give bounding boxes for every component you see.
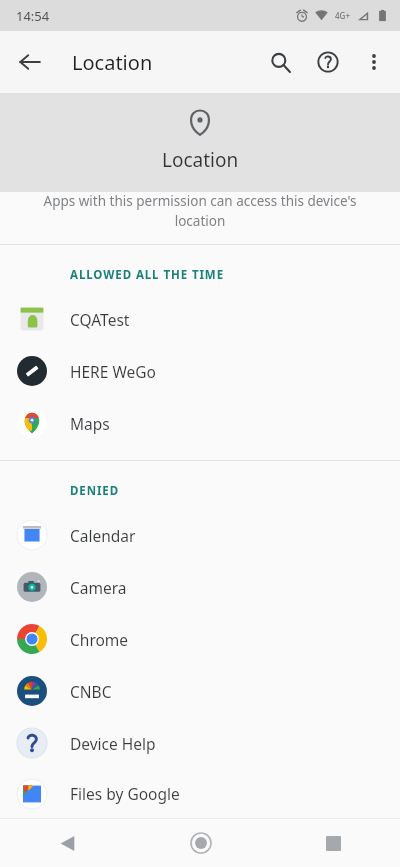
button[interactable]: Back [0, 819, 134, 867]
staticText: CNBC [70, 681, 112, 702]
button[interactable]: Back [6, 38, 54, 86]
button[interactable]: Maps [0, 397, 400, 449]
staticText: Device Help [70, 733, 156, 754]
button[interactable]: Search [256, 38, 304, 86]
staticText: 14:54 [16, 7, 50, 25]
button[interactable]: Home [134, 819, 267, 867]
button[interactable]: Help [304, 38, 352, 86]
staticText: HERE WeGo [70, 361, 156, 382]
staticText: Location [162, 147, 239, 173]
button[interactable]: Files by Google [0, 769, 400, 818]
staticText: CQATest [70, 309, 130, 330]
button[interactable]: Chrome [0, 613, 400, 665]
button[interactable]: Recent apps [267, 819, 400, 867]
button[interactable]: Device Help [0, 717, 400, 769]
button[interactable]: Camera [0, 561, 400, 613]
staticText: Files by Google [70, 783, 180, 804]
button[interactable]: Calendar [0, 509, 400, 561]
staticText: Calendar [70, 525, 136, 546]
staticText: Chrome [70, 629, 129, 650]
staticText: ALLOWED ALL THE TIME [70, 267, 224, 283]
staticText: 4G+ [335, 10, 350, 21]
button[interactable]: CQATest [0, 293, 400, 345]
staticText: Apps with this permission can access thi… [36, 192, 364, 230]
staticText: Camera [70, 577, 127, 598]
staticText: Maps [70, 413, 110, 434]
button[interactable]: HERE WeGo [0, 345, 400, 397]
staticText: DENIED [70, 483, 120, 499]
button[interactable]: More options [352, 40, 396, 84]
staticText: Location [72, 49, 153, 76]
button[interactable]: CNBC [0, 665, 400, 717]
